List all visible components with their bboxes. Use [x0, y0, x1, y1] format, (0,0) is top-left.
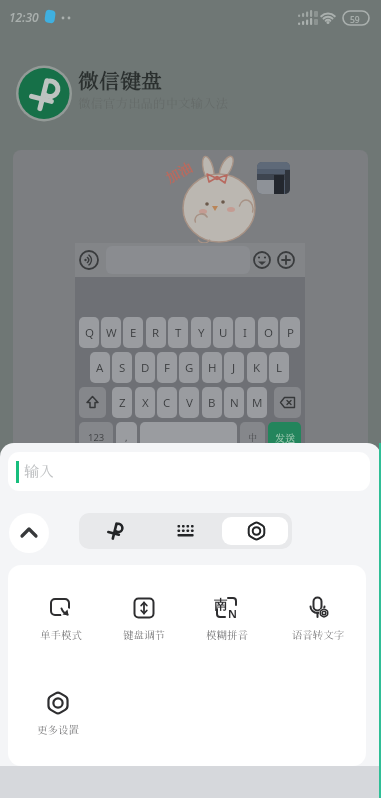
- staticText: B: [208, 395, 216, 411]
- staticText: T: [175, 325, 182, 341]
- staticText: E: [130, 325, 137, 341]
- staticText: Z: [119, 395, 126, 411]
- staticText: S: [119, 360, 126, 376]
- staticText: 键盘调节: [107, 629, 181, 649]
- staticText: R: [152, 325, 160, 341]
- button[interactable]: [79, 513, 150, 549]
- staticText: L: [276, 360, 283, 376]
- staticText: U: [219, 325, 228, 341]
- staticText: 微信键盘: [78, 68, 162, 94]
- button[interactable]: 键盘调节: [107, 595, 181, 655]
- button[interactable]: 南: [190, 595, 264, 655]
- button[interactable]: 输入: [8, 452, 370, 491]
- button[interactable]: [221, 513, 292, 549]
- staticText: 中: [248, 432, 258, 443]
- staticText: X: [142, 395, 149, 411]
- button[interactable]: [9, 513, 49, 553]
- staticText: J: [232, 360, 236, 376]
- staticText: 发送: [275, 432, 295, 443]
- button[interactable]: [150, 513, 221, 549]
- staticText: W: [106, 325, 117, 341]
- staticText: V: [186, 395, 193, 411]
- staticText: N: [230, 395, 239, 411]
- staticText: 南: [214, 596, 227, 612]
- staticText: 模糊拼音: [190, 629, 264, 649]
- staticText: A: [96, 360, 104, 376]
- staticText: D: [141, 360, 150, 376]
- staticText: G: [185, 360, 194, 376]
- staticText: 微信官方出品的中文输入法: [78, 96, 229, 111]
- button[interactable]: 语音转文字: [273, 595, 363, 655]
- staticText: 输入: [24, 462, 55, 480]
- staticText: 59: [350, 14, 360, 26]
- staticText: 更多设置: [21, 724, 95, 744]
- staticText: Y: [198, 325, 205, 341]
- button[interactable]: 单手模式: [24, 595, 98, 655]
- staticText: Q: [85, 325, 94, 341]
- staticText: O: [264, 325, 273, 341]
- staticText: 加油: [163, 158, 195, 187]
- staticText: H: [208, 360, 217, 376]
- staticText: 单手模式: [24, 629, 98, 649]
- staticText: M: [252, 395, 263, 411]
- staticText: C: [163, 395, 171, 411]
- staticText: 12:30: [9, 9, 39, 25]
- button[interactable]: 更多设置: [21, 690, 95, 750]
- staticText: N: [228, 606, 237, 621]
- staticText: ,: [125, 431, 128, 443]
- staticText: K: [253, 360, 261, 376]
- staticText: I: [243, 325, 247, 341]
- staticText: 123: [88, 431, 105, 443]
- staticText: P: [287, 325, 294, 341]
- staticText: F: [164, 360, 170, 376]
- staticText: 语音转文字: [273, 629, 363, 649]
